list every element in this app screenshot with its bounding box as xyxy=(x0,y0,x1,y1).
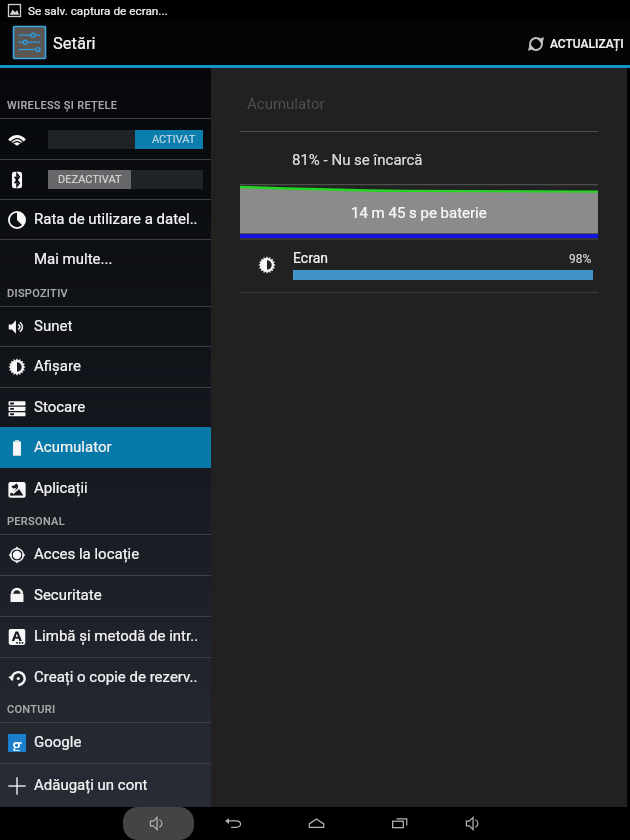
staticText: Acumulator xyxy=(34,438,112,456)
button[interactable]: Recents xyxy=(380,807,418,840)
staticText: PERSONAL xyxy=(7,515,65,528)
button[interactable]: Bluetooth xyxy=(0,160,211,199)
button[interactable]: Stocare xyxy=(0,388,211,428)
staticText: Acumulator xyxy=(247,95,325,113)
button[interactable]: Ecran xyxy=(240,248,598,294)
staticText: Securitate xyxy=(34,586,102,604)
staticText: Setări xyxy=(53,34,96,53)
button[interactable]: Sunet xyxy=(0,307,211,347)
staticText: ACTIVAT xyxy=(152,133,196,146)
button[interactable]: Home xyxy=(297,807,335,840)
button[interactable]: Afișare xyxy=(0,347,211,387)
staticText: g xyxy=(12,733,22,751)
button[interactable]: Adăugați un cont xyxy=(0,764,211,808)
button[interactable]: Aplicații xyxy=(0,468,211,509)
staticText: Aplicații xyxy=(34,479,88,497)
button[interactable]: g xyxy=(0,723,211,763)
button[interactable]: Acumulator xyxy=(0,427,211,468)
staticText: DEZACTIVAT xyxy=(58,173,122,186)
button[interactable]: Rata de utilizare a datel.. xyxy=(0,200,211,239)
button[interactable]: Back xyxy=(214,807,252,840)
staticText: ACTUALIZAȚI xyxy=(550,37,624,51)
staticText: 14 m 45 s pe baterie xyxy=(351,204,487,222)
staticText: Adăugați un cont xyxy=(34,776,148,794)
staticText: Se salv. captura de ecran... xyxy=(28,4,168,18)
staticText: DISPOZITIV xyxy=(7,287,68,300)
button[interactable]: Volume down xyxy=(123,807,194,840)
button[interactable]: Securitate xyxy=(0,576,211,616)
staticText: 81% - Nu se încarcă xyxy=(292,151,423,169)
staticText: Afișare xyxy=(34,357,81,375)
staticText: Mai multe... xyxy=(34,250,113,268)
staticText: Sunet xyxy=(34,317,73,335)
button[interactable]: Acces la locație xyxy=(0,535,211,575)
button[interactable]: Mai multe... xyxy=(0,240,211,279)
staticText: Acces la locație xyxy=(34,545,140,563)
staticText: Creați o copie de rezerv.. xyxy=(34,668,198,686)
button[interactable]: Creați o copie de rezerv.. xyxy=(0,658,211,698)
staticText: WIRELESS ȘI REȚELE xyxy=(7,99,118,112)
button[interactable]: ACTUALIZAȚI xyxy=(521,22,630,66)
button[interactable]: Wi-Fi xyxy=(0,119,211,159)
button[interactable]: Limbă și metodă de intr.. xyxy=(0,617,211,657)
staticText: Limbă și metodă de intr.. xyxy=(34,627,199,645)
staticText: 98% xyxy=(569,252,592,266)
staticText: Stocare xyxy=(34,398,86,416)
button[interactable]: Volume down xyxy=(137,807,175,840)
staticText: CONTURI xyxy=(7,703,56,716)
staticText: Ecran xyxy=(293,250,328,266)
staticText: Rata de utilizare a datel.. xyxy=(34,210,198,228)
staticText: Google xyxy=(34,733,82,751)
button[interactable]: Volume up xyxy=(453,807,491,840)
